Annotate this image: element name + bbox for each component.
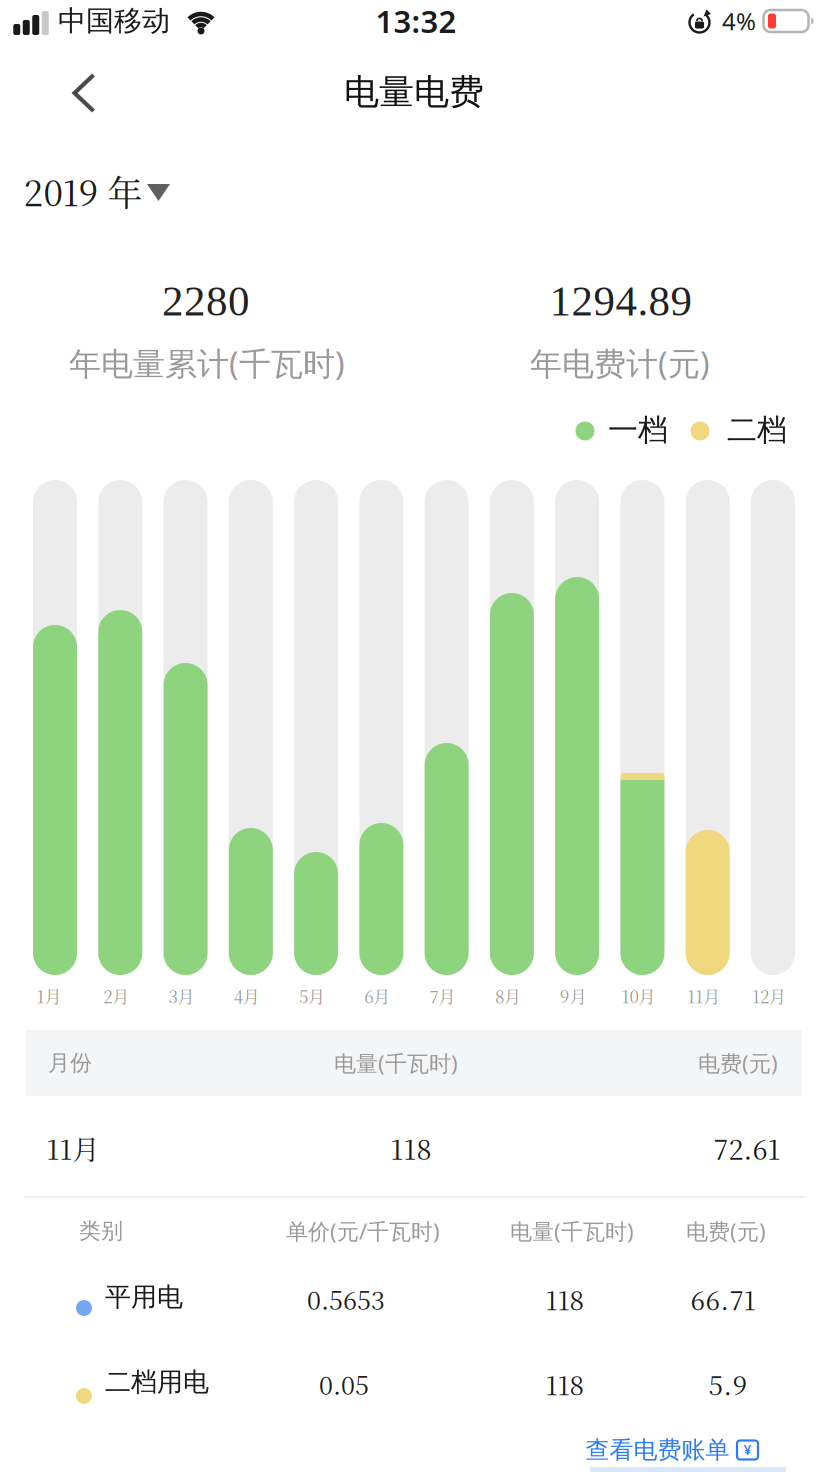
staticText: 7月 bbox=[430, 984, 456, 1008]
staticText: 类别 bbox=[79, 1217, 123, 1245]
staticText: 电费(元) bbox=[698, 1048, 778, 1078]
staticText: 0.05 bbox=[319, 1366, 369, 1402]
staticText: 一档 bbox=[608, 411, 668, 449]
staticText: 2019 年 bbox=[23, 166, 142, 216]
staticText: 查看电费账单 bbox=[585, 1435, 729, 1465]
staticText: 118 bbox=[545, 1280, 584, 1318]
staticText: 月份 bbox=[48, 1049, 92, 1077]
staticText: 66.71 bbox=[690, 1280, 755, 1318]
staticText: 年电量累计(千瓦时) bbox=[69, 341, 345, 385]
staticText: 12月 bbox=[752, 984, 786, 1008]
staticText: 11月 bbox=[687, 984, 720, 1008]
staticText: 4月 bbox=[234, 984, 260, 1008]
staticText: 2月 bbox=[103, 984, 129, 1008]
staticText: 10月 bbox=[621, 984, 655, 1008]
staticText: 电量(千瓦时) bbox=[334, 1048, 458, 1078]
staticText: 0.5653 bbox=[307, 1281, 385, 1317]
staticText: 平用电 bbox=[105, 1281, 183, 1313]
staticText: 电量(千瓦时) bbox=[510, 1216, 634, 1246]
staticText: 5月 bbox=[299, 984, 325, 1008]
staticText: 3月 bbox=[168, 984, 194, 1008]
staticText: 二档用电 bbox=[105, 1366, 209, 1398]
staticText: 1294.89 bbox=[549, 277, 692, 325]
staticText: 9月 bbox=[560, 984, 587, 1008]
staticText: 8月 bbox=[495, 984, 521, 1008]
staticText: 电费(元) bbox=[686, 1216, 766, 1246]
button[interactable] bbox=[71, 72, 96, 114]
staticText: 年电费计(元) bbox=[530, 341, 710, 385]
staticText: 4% bbox=[722, 5, 756, 37]
staticText: 2280 bbox=[162, 277, 250, 325]
staticText: 72.61 bbox=[713, 1129, 780, 1167]
staticText: 中国移动 bbox=[58, 3, 170, 39]
staticText: 电量电费 bbox=[344, 70, 484, 114]
staticText: 118 bbox=[545, 1365, 584, 1403]
staticText: 11月 bbox=[46, 1129, 99, 1167]
staticText: 5.9 bbox=[708, 1365, 747, 1403]
staticText: 1月 bbox=[36, 984, 61, 1008]
staticText: 118 bbox=[390, 1129, 431, 1167]
staticText: 二档 bbox=[727, 411, 787, 449]
staticText: 6月 bbox=[364, 984, 390, 1008]
staticText: 单价(元/千瓦时) bbox=[286, 1216, 440, 1246]
staticText: ¥ bbox=[743, 1440, 751, 1459]
button[interactable]: 2019 年 bbox=[25, 169, 175, 213]
staticText: 13:32 bbox=[375, 0, 456, 42]
button[interactable]: 查看电费账单 bbox=[585, 1435, 758, 1465]
